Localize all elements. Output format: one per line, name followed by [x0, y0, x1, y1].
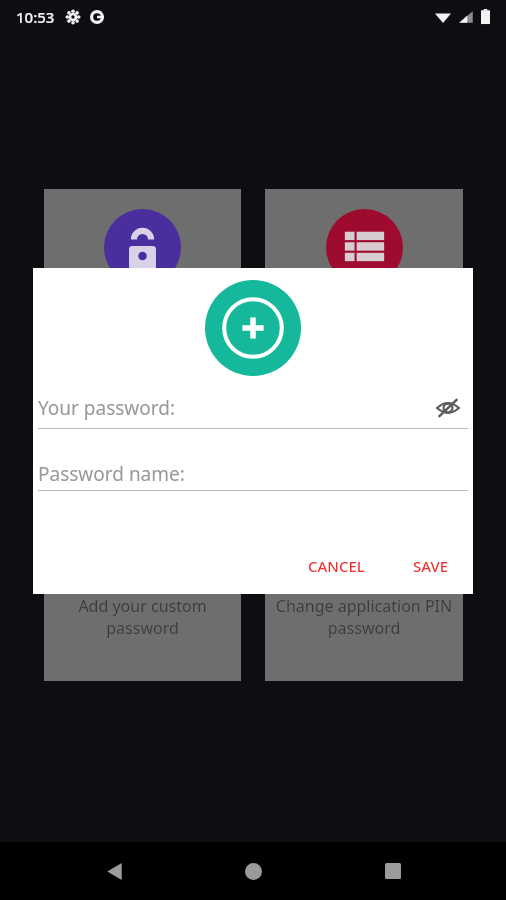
- staticText: 10:53: [16, 7, 55, 27]
- staticText: SAVE: [413, 556, 449, 576]
- staticText: Change application PIN password: [265, 595, 463, 639]
- button[interactable]: Recents: [367, 845, 419, 897]
- button[interactable]: Home: [227, 845, 279, 897]
- button[interactable]: Add your custom password: [44, 189, 241, 681]
- staticText: Your password:: [38, 395, 176, 421]
- staticText: Add your custom password: [44, 595, 241, 639]
- button[interactable]: Show password: [428, 388, 468, 428]
- button[interactable]: SAVE: [403, 548, 459, 584]
- staticText: Password name:: [38, 461, 185, 487]
- staticText: CANCEL: [308, 556, 365, 576]
- button[interactable]: Back: [88, 845, 140, 897]
- button[interactable]: Change application PIN password: [265, 189, 463, 681]
- button[interactable]: CANCEL: [298, 548, 375, 584]
